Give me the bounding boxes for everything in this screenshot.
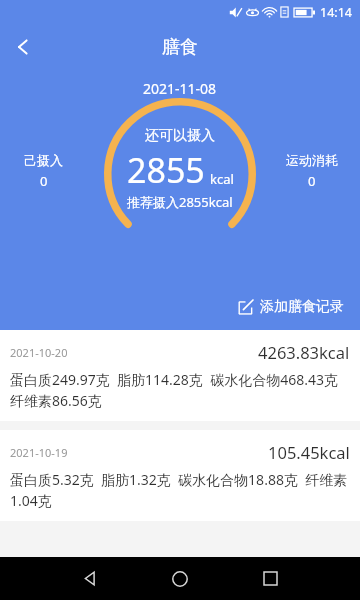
staticText: 添加膳食记录	[260, 298, 344, 316]
staticText: 2021-11-08	[143, 79, 217, 98]
button[interactable]: Back	[0, 24, 46, 70]
staticText: 蛋白质5.32克 脂肪1.32克 碳水化合物18.88克 纤维素1.04克	[10, 470, 350, 510]
staticText: 0	[40, 172, 48, 190]
button[interactable]: 添加膳食记录	[234, 294, 348, 320]
staticText: 蛋白质249.97克 脂肪114.28克 碳水化合物468.43克 纤维素86.…	[10, 370, 350, 410]
button[interactable]: Back	[68, 557, 112, 600]
staticText: 0	[308, 172, 316, 190]
button[interactable]: Recent apps	[248, 557, 292, 600]
staticText: 105.45kcal	[268, 441, 350, 463]
staticText: 2021-10-20	[10, 345, 68, 360]
staticText: 2855	[127, 147, 205, 193]
staticText: 己摄入	[24, 152, 63, 168]
button[interactable]: 2021-10-20	[0, 330, 360, 421]
staticText: kcal	[210, 170, 234, 188]
staticText: 2021-10-19	[10, 445, 68, 460]
staticText: 4263.83kcal	[258, 341, 350, 363]
staticText: 14:14	[320, 4, 352, 21]
button[interactable]: 2021-10-19	[0, 430, 360, 521]
staticText: 还可以摄入	[145, 127, 215, 145]
staticText: 推荐摄入2855kcal	[127, 193, 233, 211]
button[interactable]: Home	[158, 557, 202, 600]
staticText: 运动消耗	[286, 152, 338, 168]
staticText: 膳食	[162, 36, 198, 59]
